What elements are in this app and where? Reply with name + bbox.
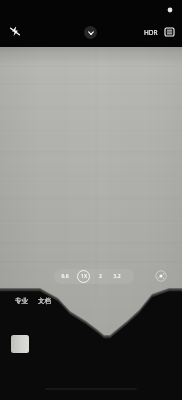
button[interactable]: 0.6 [59, 271, 70, 282]
button[interactable]: 1X [77, 270, 90, 283]
button[interactable]: 文档 [38, 297, 51, 305]
staticText: HDR [144, 28, 158, 37]
staticText: 文档 [38, 297, 51, 305]
button[interactable]: Filters [155, 270, 167, 282]
button[interactable]: 3.2 [111, 271, 122, 282]
button[interactable]: 2 [95, 271, 106, 282]
button[interactable]: Expand camera options [84, 26, 97, 39]
staticText: 专业 [15, 297, 28, 305]
staticText: 1X [81, 273, 87, 280]
button[interactable]: Gallery [11, 335, 29, 353]
button[interactable]: Settings [160, 23, 178, 41]
button[interactable]: Flash off [6, 22, 24, 40]
staticText: 0.6 [61, 273, 69, 280]
button[interactable]: 专业 [15, 297, 28, 305]
staticText: 2 [99, 273, 102, 280]
staticText: 3.2 [113, 273, 121, 280]
button[interactable]: HDR [141, 23, 161, 41]
